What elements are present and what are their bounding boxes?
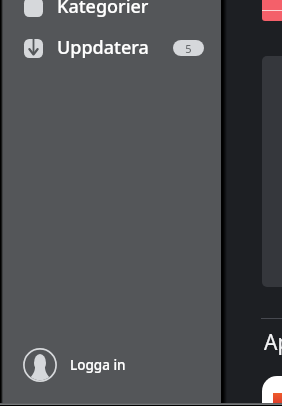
staticText: Logga in (70, 356, 126, 374)
staticText: Ap (264, 328, 282, 357)
staticText: Kategorier (57, 0, 149, 19)
staticText: 5 (185, 41, 192, 56)
button[interactable]: Logga in (0, 341, 221, 389)
button[interactable]: Uppdatera (0, 27, 221, 68)
button[interactable]: Kategorier (0, 0, 221, 27)
staticText: Uppdatera (57, 35, 149, 60)
